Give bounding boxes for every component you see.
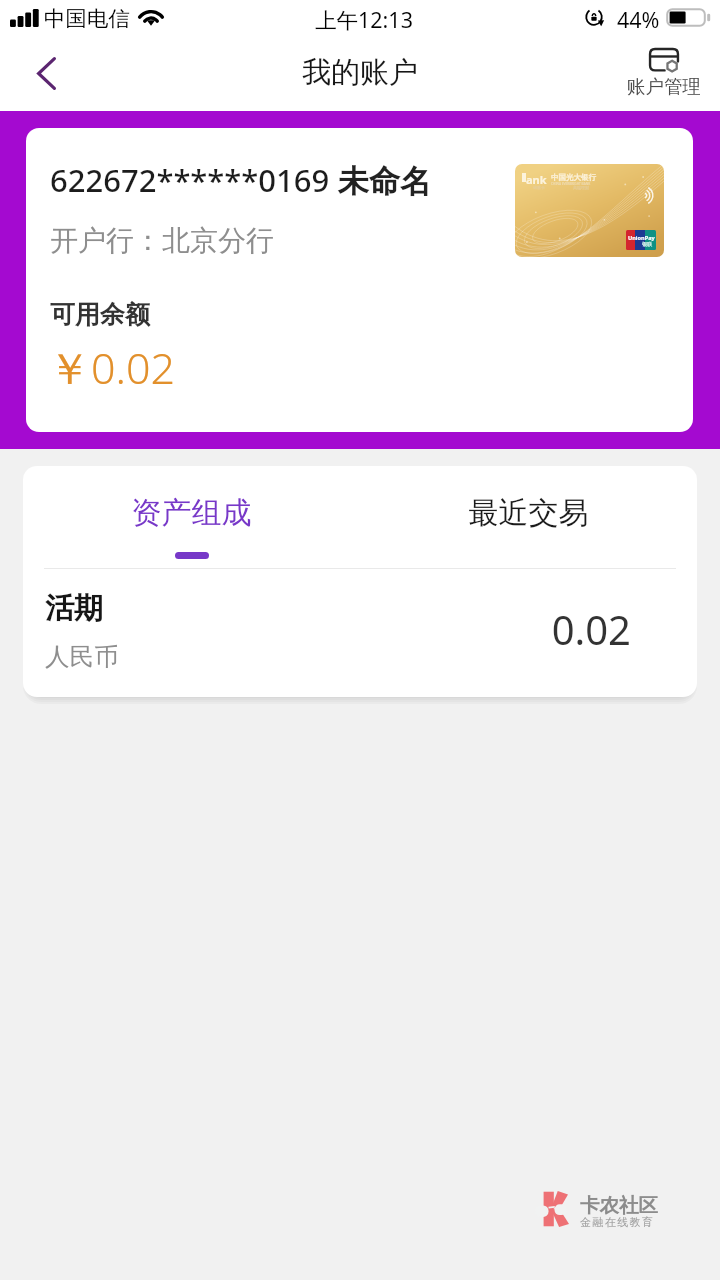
staticText: ￥0.02 <box>48 338 176 397</box>
staticText: 622672******0169 <box>50 159 330 201</box>
button[interactable]: 622672******0169 <box>26 128 693 432</box>
staticText: 中国光大银行 <box>551 173 596 182</box>
staticText: 储蓄卡 <box>533 185 545 190</box>
staticText: 最近交易 <box>360 494 697 532</box>
staticText: 44% <box>617 5 660 34</box>
staticText: 可用余额 <box>50 299 150 330</box>
staticText: 上午12:13 <box>315 5 413 34</box>
staticText: 银联 <box>642 241 652 247</box>
staticText: 0.02 <box>473 602 631 656</box>
button[interactable]: 账户管理 <box>621 49 706 98</box>
staticText: 我的账户 <box>0 54 720 91</box>
staticText: 金融在线教育 <box>580 1215 655 1229</box>
staticText: 卡农社区 <box>580 1193 658 1218</box>
button[interactable]: Back <box>12 41 74 103</box>
staticText: ank <box>526 172 547 187</box>
staticText: 中国电信 <box>44 5 130 32</box>
staticText: 人民币 <box>45 641 119 672</box>
staticText: UnionPay <box>628 234 655 242</box>
staticText: 活期 <box>45 590 103 627</box>
staticText: 未命名 <box>338 162 431 201</box>
staticText: 开户行：北京分行 <box>50 223 274 258</box>
staticText: 资产组成 <box>23 494 360 532</box>
staticText: 账户管理 <box>627 75 701 98</box>
button[interactable]: 资产组成 <box>23 466 360 569</box>
staticText: 高端理财 <box>573 185 589 190</box>
button[interactable]: 最近交易 <box>360 466 697 569</box>
staticText: CHINA EVERBRIGHT BANK <box>551 182 591 186</box>
